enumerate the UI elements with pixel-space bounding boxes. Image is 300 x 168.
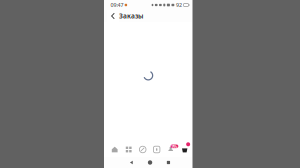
- button[interactable]: Catalog: [122, 138, 136, 157]
- button[interactable]: Back: [129, 160, 133, 165]
- button[interactable]: Home: [108, 138, 122, 157]
- button[interactable]: Home: [148, 160, 152, 165]
- button[interactable]: Deals: [136, 138, 150, 157]
- button[interactable]: Back: [107, 10, 119, 22]
- staticText: Заказы: [119, 12, 143, 20]
- button[interactable]: Favourites: [150, 138, 164, 157]
- button[interactable]: Cart: [178, 138, 192, 157]
- button[interactable]: Orders: [164, 138, 178, 157]
- staticText: 92: [176, 1, 182, 9]
- staticText: 09:47: [110, 1, 123, 9]
- staticText: 99+: [171, 144, 177, 149]
